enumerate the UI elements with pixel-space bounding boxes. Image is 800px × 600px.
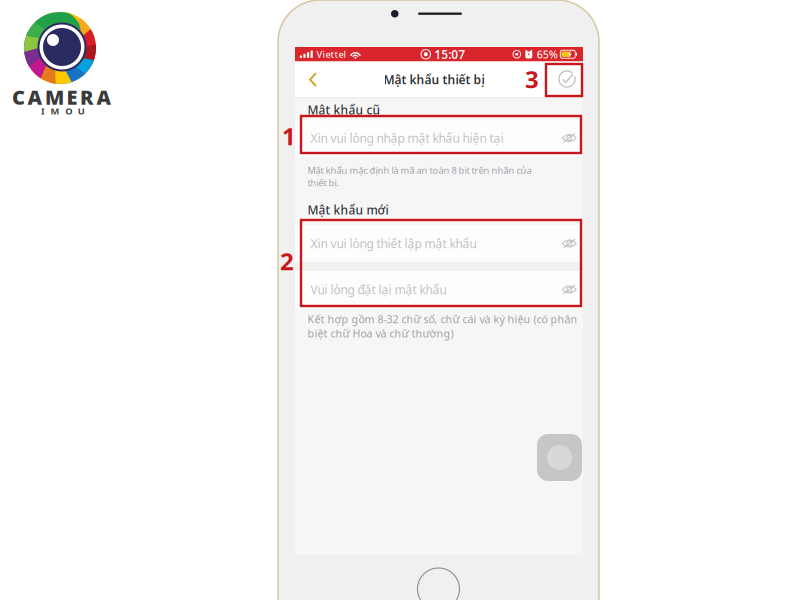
button[interactable]: Save password: [553, 65, 581, 93]
staticText: Mật khẩu cũ: [307, 102, 380, 118]
staticText: Vui lòng đặt lại mật khẩu: [310, 281, 446, 297]
button[interactable]: Xin vui lòng thiết lập mật khẩu: [295, 225, 583, 262]
staticText: Xin vui lòng nhập mật khẩu hiện tại: [310, 130, 503, 146]
staticText: Mật khẩu thiết bị: [383, 71, 484, 87]
staticText: I M O U: [41, 105, 85, 117]
button[interactable]: AssistiveTouch: [537, 434, 582, 481]
staticText: Mật khẩu mới: [307, 202, 388, 218]
staticText: Mật khẩu mặc định là mã an toàn 8 bit tr…: [307, 164, 531, 189]
button[interactable]: Vui lòng đặt lại mật khẩu: [295, 271, 583, 308]
staticText: Kết hợp gồm 8-32 chữ số, chữ cái và ký h…: [307, 312, 577, 340]
staticText: 3: [525, 63, 539, 95]
staticText: 1: [282, 120, 296, 152]
staticText: Viettel: [317, 48, 347, 60]
staticText: 65%: [537, 47, 558, 61]
staticText: 15:07: [434, 46, 465, 62]
button[interactable]: Back: [298, 63, 328, 95]
staticText: CAMERA: [12, 84, 111, 110]
button[interactable]: Xin vui lòng nhập mật khẩu hiện tại: [295, 119, 583, 156]
staticText: 2: [280, 245, 294, 277]
staticText: Xin vui lòng thiết lập mật khẩu: [310, 235, 476, 251]
